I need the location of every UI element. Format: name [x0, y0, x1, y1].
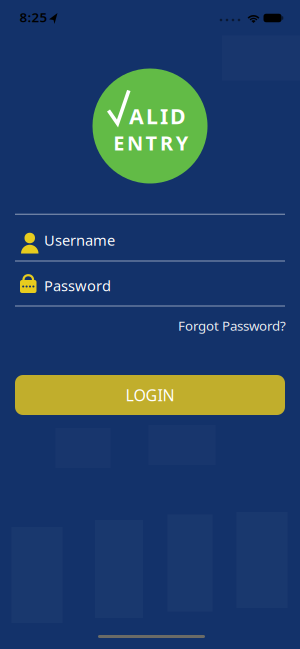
staticText: Username [44, 230, 115, 250]
staticText: Password [44, 276, 111, 295]
staticText: LOGIN [125, 384, 174, 406]
staticText: Forgot Password? [178, 317, 286, 334]
staticText: ALID [129, 102, 186, 130]
button[interactable]: Password [15, 261, 285, 306]
button[interactable]: Username [15, 214, 285, 260]
staticText: ENTRY [113, 129, 189, 156]
staticText: 8:25 [19, 8, 47, 26]
button[interactable]: Forgot Password? [126, 317, 286, 334]
button[interactable]: LOGIN [15, 375, 285, 415]
